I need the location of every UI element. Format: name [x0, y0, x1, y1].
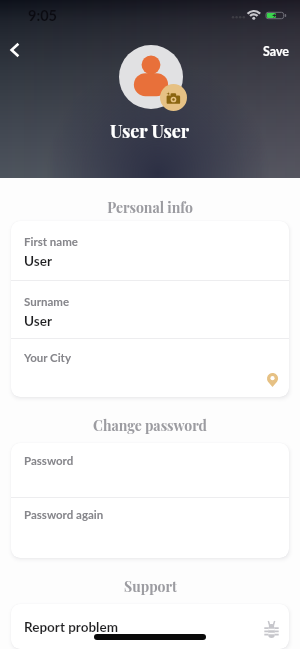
staticText: Your City	[24, 351, 71, 365]
button[interactable]: Your City	[11, 339, 289, 397]
staticText: Support	[124, 577, 177, 596]
button[interactable]: Surname	[11, 281, 289, 338]
button[interactable]: Save	[260, 42, 293, 61]
staticText: Personal info	[107, 198, 193, 217]
staticText: User	[24, 253, 52, 269]
button[interactable]: Password again	[11, 498, 289, 558]
button[interactable]: Change profile photo	[160, 84, 187, 111]
button[interactable]: First name	[11, 221, 289, 280]
button[interactable]: Password	[11, 443, 289, 497]
staticText: 9:05	[28, 7, 57, 24]
staticText: Surname	[24, 295, 70, 309]
staticText: Password again	[24, 508, 104, 522]
staticText: Password	[24, 454, 74, 468]
staticText: Change password	[93, 416, 207, 435]
staticText: User	[24, 313, 52, 329]
button[interactable]: Report problem	[11, 604, 289, 649]
staticText: First name	[24, 235, 78, 249]
staticText: User User	[110, 119, 190, 143]
staticText: Save	[263, 44, 290, 59]
staticText: Report problem	[24, 619, 118, 635]
button[interactable]: Back	[6, 42, 26, 58]
button[interactable]: Profile photo	[119, 45, 183, 109]
